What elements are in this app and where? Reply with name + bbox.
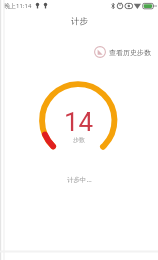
staticText: 14 [64,107,94,137]
other: 历史步数 [94,46,106,58]
staticText: 查看历史步数 [109,48,151,57]
staticText: 计步中... [67,175,92,184]
button[interactable]: 历史步数 [92,44,153,60]
staticText: 计步 [71,16,88,27]
staticText: 步数 [73,136,85,144]
staticText: 晚上11:14 [4,2,32,10]
